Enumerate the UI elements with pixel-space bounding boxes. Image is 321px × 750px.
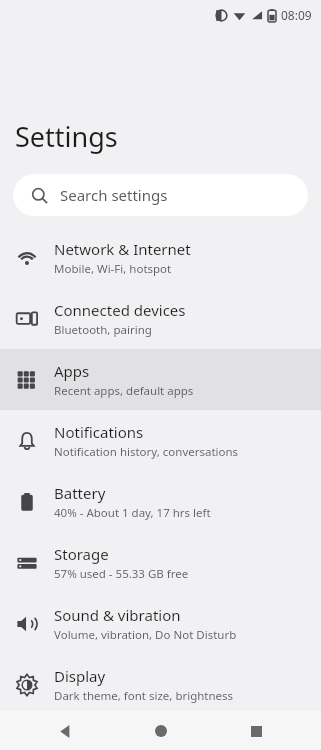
button[interactable]: Network & Internet [0, 227, 321, 288]
staticText: Network & Internet [54, 239, 191, 259]
button[interactable]: Back [50, 716, 80, 746]
button[interactable]: Connected devices [0, 288, 321, 349]
button[interactable]: Home [146, 716, 176, 746]
staticText: Settings [15, 118, 118, 155]
staticText: Wallpaper [38, 722, 119, 745]
button[interactable]: Notifications [0, 410, 321, 471]
staticText: Volume, vibration, Do Not Disturb [54, 627, 237, 643]
staticText: Storage [54, 544, 109, 564]
button[interactable]: Display [0, 654, 321, 715]
staticText: Notification history, conversations [54, 444, 239, 460]
staticText: Search settings [60, 185, 168, 205]
staticText: Notifications [54, 422, 144, 442]
staticText: 08:09 [281, 7, 312, 23]
staticText: Recent apps, default apps [54, 383, 194, 399]
staticText: 57% used - 55.33 GB free [54, 566, 189, 582]
staticText: Battery [54, 483, 106, 503]
button[interactable]: Sound & vibration [0, 593, 321, 654]
staticText: Mobile, Wi-Fi, hotspot [54, 261, 172, 277]
button[interactable]: Apps [0, 349, 321, 410]
staticText: Bluetooth, pairing [54, 322, 152, 338]
staticText: 40% - About 1 day, 17 hrs left [54, 505, 211, 521]
staticText: Dark theme, font size, brightness [54, 688, 234, 704]
staticText: Sound & vibration [54, 605, 181, 625]
staticText: Connected devices [54, 300, 186, 320]
button[interactable]: Storage [0, 532, 321, 593]
button[interactable]: Search settings [13, 174, 308, 216]
staticText: Apps [54, 361, 90, 381]
staticText: Display [54, 666, 106, 686]
button[interactable]: Battery [0, 471, 321, 532]
button[interactable]: Recent apps [241, 716, 271, 746]
